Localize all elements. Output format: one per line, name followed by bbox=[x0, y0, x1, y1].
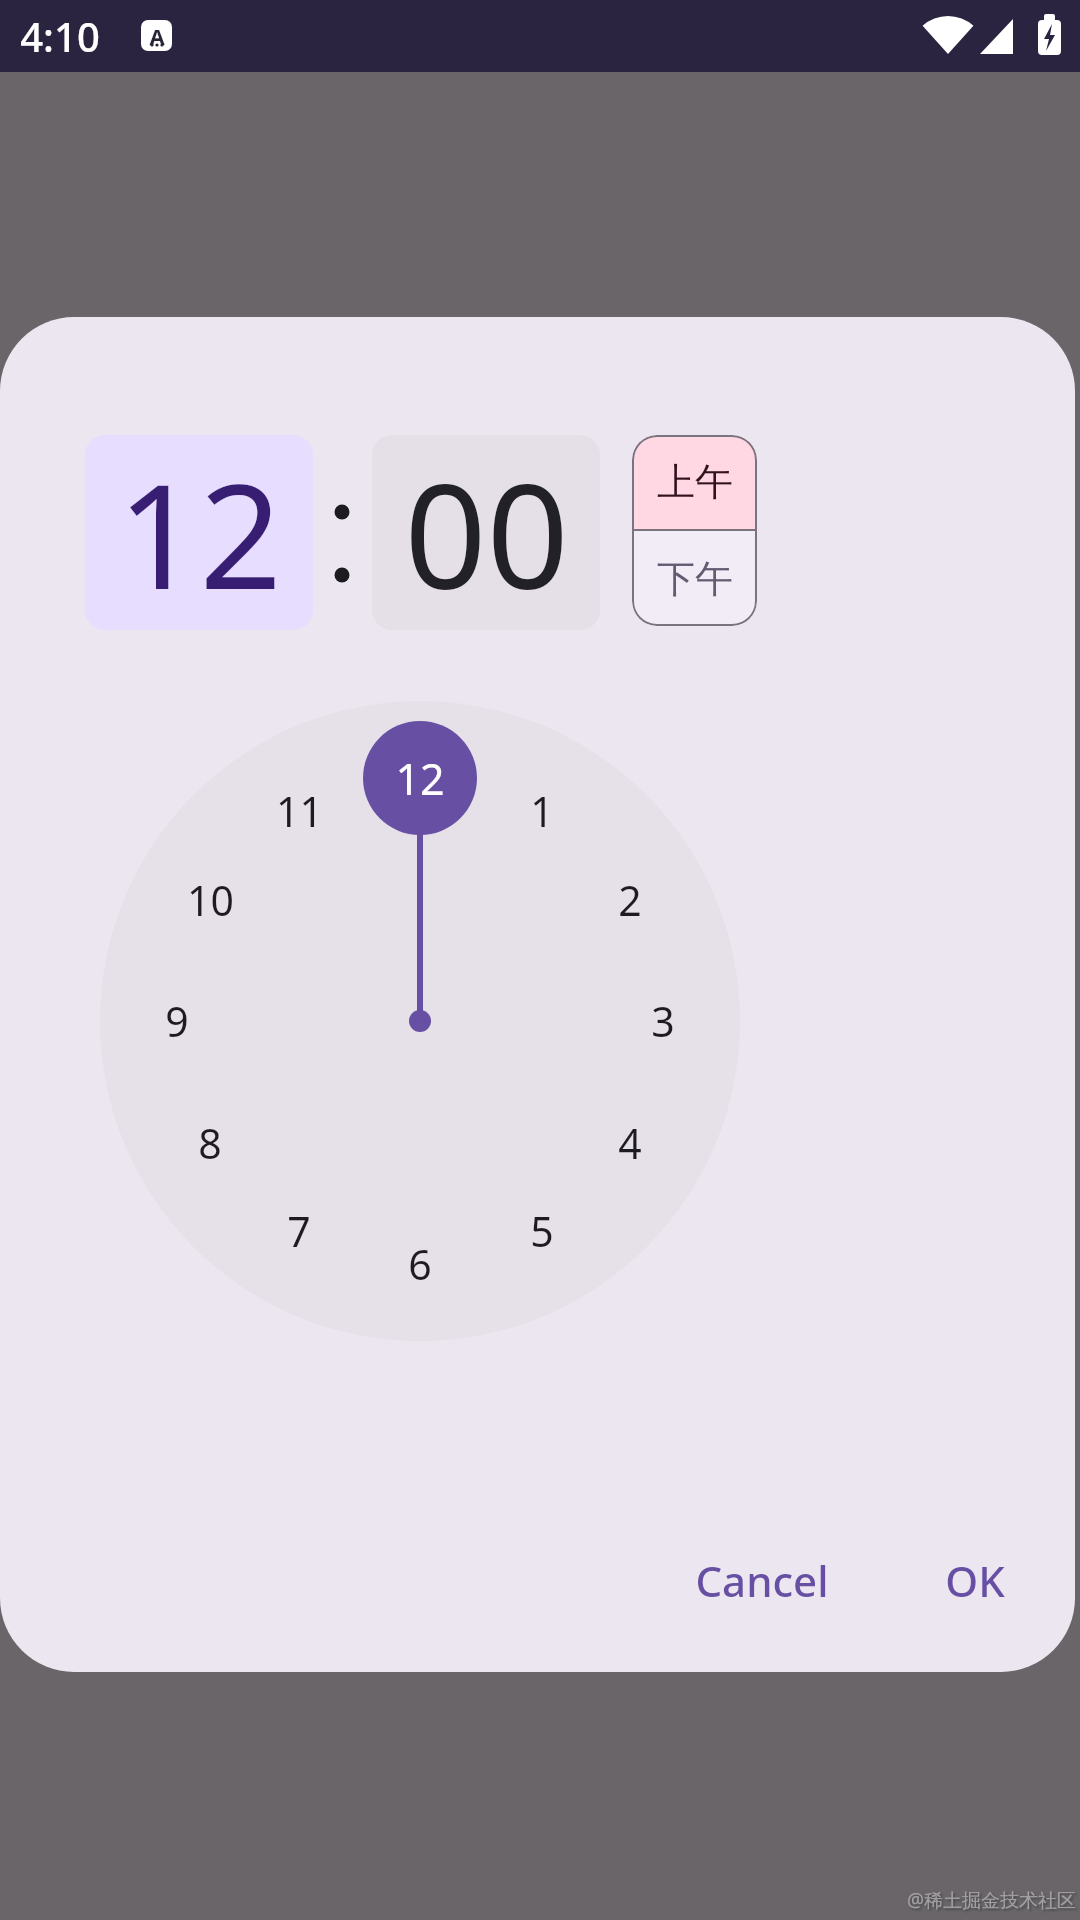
button[interactable]: 00 bbox=[372, 435, 600, 630]
staticText: A bbox=[149, 21, 165, 51]
button[interactable]: 下午 bbox=[632, 531, 757, 626]
staticText: 4 bbox=[618, 1115, 642, 1171]
staticText: @稀土掘金技术社区 bbox=[907, 1887, 1077, 1913]
staticText: 下午 bbox=[657, 555, 733, 603]
staticText: 7 bbox=[287, 1203, 311, 1259]
staticText: 12 bbox=[395, 749, 445, 808]
staticText: 上午 bbox=[657, 458, 733, 506]
staticText: 3 bbox=[651, 993, 675, 1049]
staticText: 8 bbox=[198, 1115, 222, 1171]
button[interactable]: 上午 bbox=[632, 435, 757, 529]
staticText: 11 bbox=[276, 783, 323, 839]
staticText: 00 bbox=[404, 435, 569, 630]
staticText: Cancel bbox=[695, 1552, 829, 1609]
staticText: 9 bbox=[165, 993, 189, 1049]
staticText: OK bbox=[945, 1552, 1005, 1609]
staticText: 5 bbox=[530, 1203, 554, 1259]
button[interactable]: Cancel bbox=[672, 1540, 852, 1620]
button[interactable]: OK bbox=[915, 1540, 1035, 1620]
staticText: 4:10 bbox=[20, 9, 100, 63]
button[interactable]: 12 bbox=[85, 435, 313, 630]
staticText: 10 bbox=[187, 872, 234, 928]
staticText: 6 bbox=[408, 1236, 432, 1292]
staticText: 2 bbox=[618, 872, 642, 928]
staticText: 12 bbox=[117, 435, 282, 630]
staticText: 1 bbox=[530, 783, 554, 839]
